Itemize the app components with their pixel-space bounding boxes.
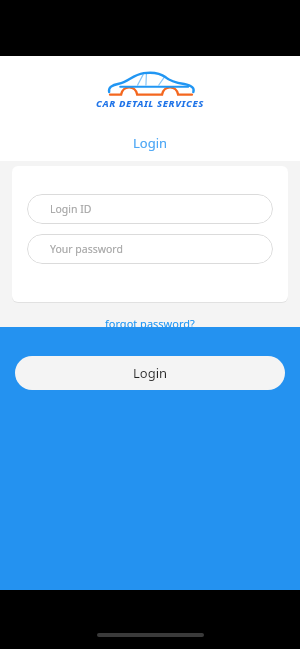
- button[interactable]: Login: [15, 356, 285, 390]
- staticText: Login: [133, 134, 168, 152]
- button[interactable]: Your password: [27, 234, 273, 264]
- staticText: Your password: [50, 242, 123, 256]
- button[interactable]: Login ID: [27, 194, 273, 224]
- other: Car Detail Services logo: [105, 69, 197, 101]
- button[interactable]: Login: [0, 131, 300, 155]
- staticText: forgot password?: [105, 316, 195, 331]
- staticText: Login: [133, 364, 168, 382]
- staticText: Login ID: [50, 202, 92, 216]
- button[interactable]: forgot password?: [0, 314, 300, 332]
- staticText: CAR DETAIL SERVICES: [0, 97, 300, 110]
